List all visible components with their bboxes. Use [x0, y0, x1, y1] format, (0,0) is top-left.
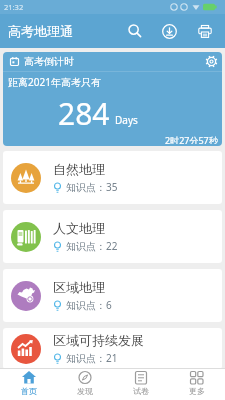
staticText: 首页: [21, 386, 37, 396]
staticText: 284: [58, 93, 110, 134]
button[interactable]: 发现: [57, 369, 113, 400]
staticText: 高考地理通: [8, 23, 73, 39]
staticText: 知识点：35: [66, 180, 118, 194]
button[interactable]: 首页: [0, 369, 57, 400]
staticText: 2时27分57秒: [165, 134, 218, 144]
button[interactable]: 高考倒计时: [3, 52, 222, 146]
button[interactable]: 自然地理: [3, 151, 222, 204]
staticText: 发现: [77, 386, 93, 396]
staticText: 高考倒计时: [24, 55, 74, 68]
staticText: 更多: [189, 386, 205, 396]
staticText: 区域可持续发展: [53, 332, 144, 348]
staticText: 知识点：22: [66, 239, 118, 253]
button[interactable]: 人文地理: [3, 210, 222, 263]
button[interactable]: 试卷: [113, 369, 169, 400]
staticText: 距离2021年高考只有: [8, 75, 101, 89]
button[interactable]: [190, 14, 220, 48]
button[interactable]: 更多: [169, 369, 225, 400]
button[interactable]: [154, 14, 184, 48]
button[interactable]: 区域地理: [3, 269, 222, 322]
button[interactable]: 区域可持续发展: [3, 328, 222, 369]
staticText: 自然地理: [53, 161, 105, 177]
staticText: 知识点：21: [66, 351, 118, 365]
staticText: 区域地理: [53, 279, 105, 295]
staticText: Days: [115, 113, 138, 127]
staticText: 21:32: [4, 2, 24, 12]
button[interactable]: [120, 14, 150, 48]
staticText: 知识点：6: [66, 298, 112, 312]
staticText: 试卷: [133, 386, 149, 396]
button[interactable]: [200, 52, 222, 71]
staticText: 人文地理: [53, 220, 105, 236]
